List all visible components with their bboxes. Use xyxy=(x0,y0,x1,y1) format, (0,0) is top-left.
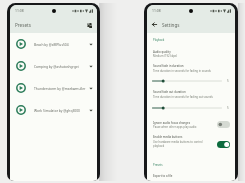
staticText: Work Simulator by @ghq3000 xyxy=(34,108,86,112)
staticText: Ignore audio focus changes xyxy=(153,121,191,125)
staticText: Audio quality xyxy=(153,50,171,54)
staticText: Time duration in seconds for fading out … xyxy=(153,95,213,99)
staticText: Presets xyxy=(153,163,163,167)
button[interactable]: Duration slider xyxy=(147,78,235,84)
staticText: 5 xyxy=(227,106,229,110)
button[interactable]: Toggle on xyxy=(217,141,230,148)
button[interactable]: Duration slider xyxy=(147,105,235,111)
staticText: 11:08 xyxy=(15,8,24,13)
staticText: Camping by @ashutoshgrgei xyxy=(34,64,86,68)
staticText: Pause when other apps play audio xyxy=(153,125,197,129)
staticText: Use hardware media buttons to control xyxy=(153,140,203,144)
staticText: Beach by @xMPlus504 xyxy=(34,42,86,46)
button[interactable]: More options xyxy=(86,104,95,116)
staticText: 11:08 xyxy=(152,8,161,13)
staticText: Enable media buttons xyxy=(153,135,183,139)
button[interactable]: More options xyxy=(86,82,95,94)
button[interactable]: Toggle off xyxy=(217,121,230,128)
button[interactable]: Back xyxy=(150,20,159,29)
staticText: Sound fade out duration xyxy=(153,90,186,94)
button[interactable]: Settings xyxy=(84,20,94,30)
staticText: Sound fade in duration xyxy=(153,64,184,68)
button[interactable]: Beach by @xMPlus504 xyxy=(10,33,97,55)
staticText: Settings xyxy=(162,22,180,28)
staticText: Playback xyxy=(153,38,165,42)
staticText: Presets xyxy=(15,22,31,28)
button[interactable]: More options xyxy=(86,38,95,50)
staticText: Medium (192 kbps) xyxy=(153,54,178,58)
staticText: Export to a file xyxy=(153,174,173,178)
staticText: playback xyxy=(153,144,165,148)
button[interactable]: Camping by @ashutoshgrgei xyxy=(10,55,97,77)
staticText: 5 xyxy=(227,79,229,83)
button[interactable]: More options xyxy=(86,60,95,72)
staticText: Thunderstorm by @markwmuller xyxy=(34,86,86,90)
staticText: Time duration in seconds for fading in s… xyxy=(153,69,211,73)
button[interactable]: Thunderstorm by @markwmuller xyxy=(10,77,97,99)
button[interactable]: Work Simulator by @ghq3000 xyxy=(10,99,97,121)
